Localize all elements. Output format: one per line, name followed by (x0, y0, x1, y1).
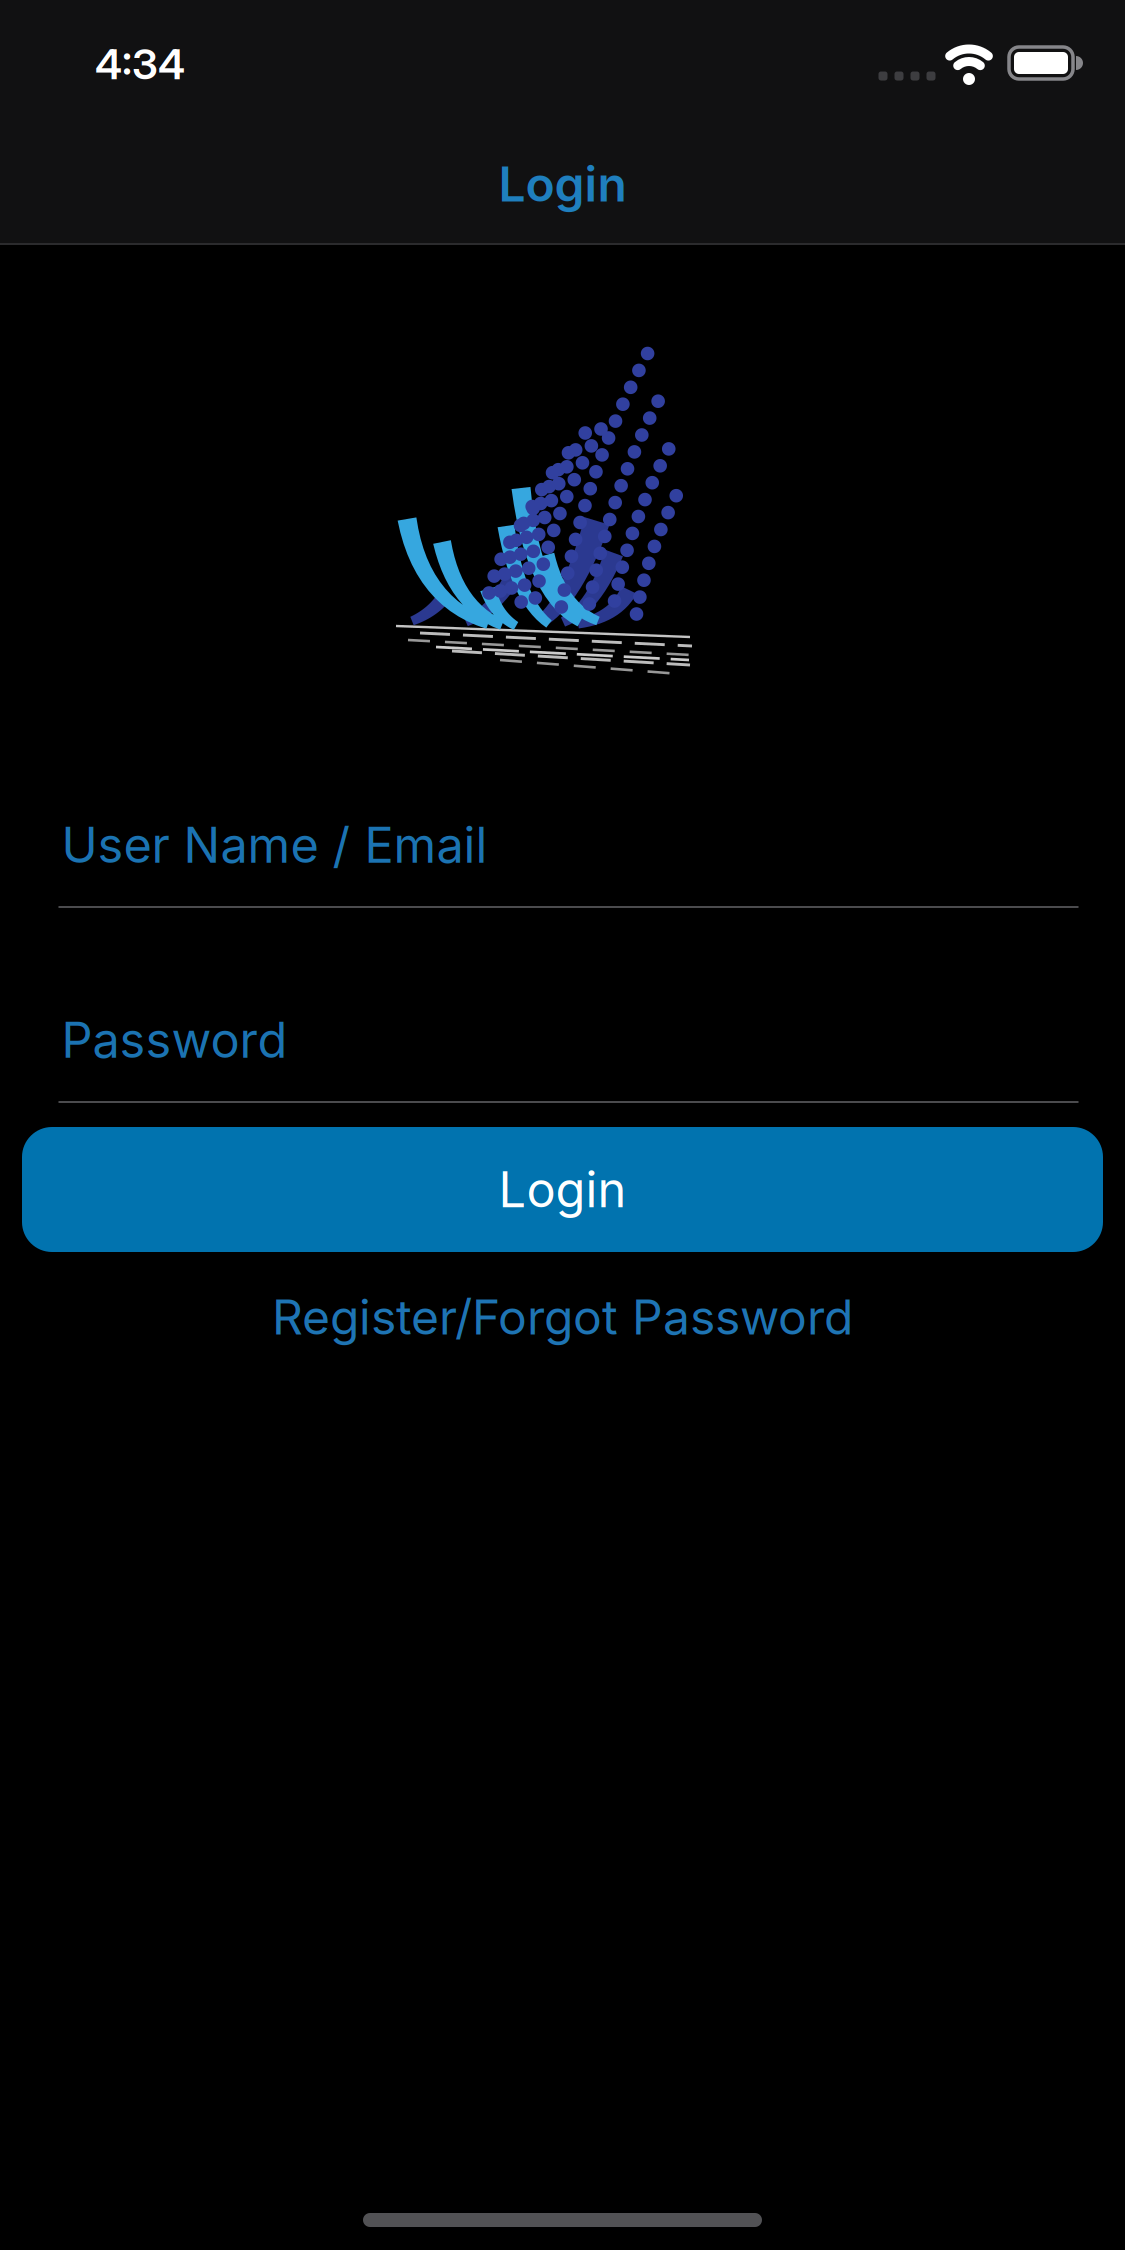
staticText: 4:34 (95, 39, 185, 89)
staticText: Login (498, 155, 626, 213)
button[interactable]: Register/Forgot Password (272, 1288, 853, 1346)
button[interactable]: Password (58, 979, 1078, 1103)
staticText: Register/Forgot Password (272, 1288, 853, 1346)
button[interactable]: Login (22, 1127, 1103, 1252)
staticText: Password (61, 1011, 287, 1069)
button[interactable]: User Name / Email (58, 784, 1078, 908)
staticText: Login (498, 1160, 626, 1219)
staticText: User Name / Email (61, 816, 487, 874)
